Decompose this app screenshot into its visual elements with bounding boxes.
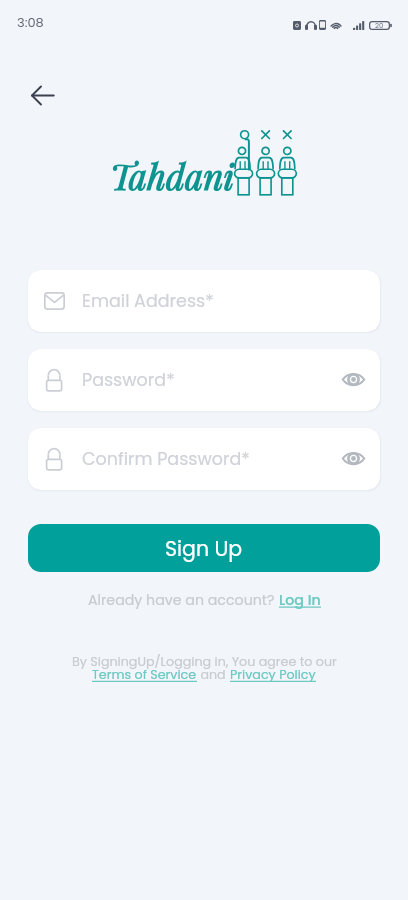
staticText: Terms of Service <box>92 666 197 684</box>
button[interactable]: Email Address* <box>28 270 380 332</box>
button[interactable]: Back <box>22 75 62 115</box>
staticText: Password* <box>82 368 175 393</box>
staticText: 3:08 <box>17 13 44 31</box>
staticText: 20 <box>375 21 384 30</box>
button[interactable]: Log In <box>279 590 321 610</box>
staticText: Already have an account? <box>88 590 279 610</box>
button[interactable]: Show password <box>339 445 367 473</box>
staticText: and <box>197 666 230 684</box>
staticText: Email Address* <box>82 289 214 314</box>
button[interactable]: Terms of Service <box>92 666 197 684</box>
staticText: By SigningUp/Logging in, You agree to ou… <box>72 653 337 671</box>
staticText: Log In <box>279 590 321 610</box>
staticText: Privacy Policy <box>230 666 316 684</box>
staticText: Confirm Password* <box>82 447 250 472</box>
button[interactable]: Confirm Password* <box>28 428 380 490</box>
staticText: Tahdani <box>110 152 235 199</box>
button[interactable]: Show password <box>339 366 367 394</box>
button[interactable]: Privacy Policy <box>230 666 316 684</box>
button[interactable]: Password* <box>28 349 380 411</box>
staticText: Sign Up <box>165 534 243 563</box>
button[interactable]: Sign Up <box>28 524 380 572</box>
